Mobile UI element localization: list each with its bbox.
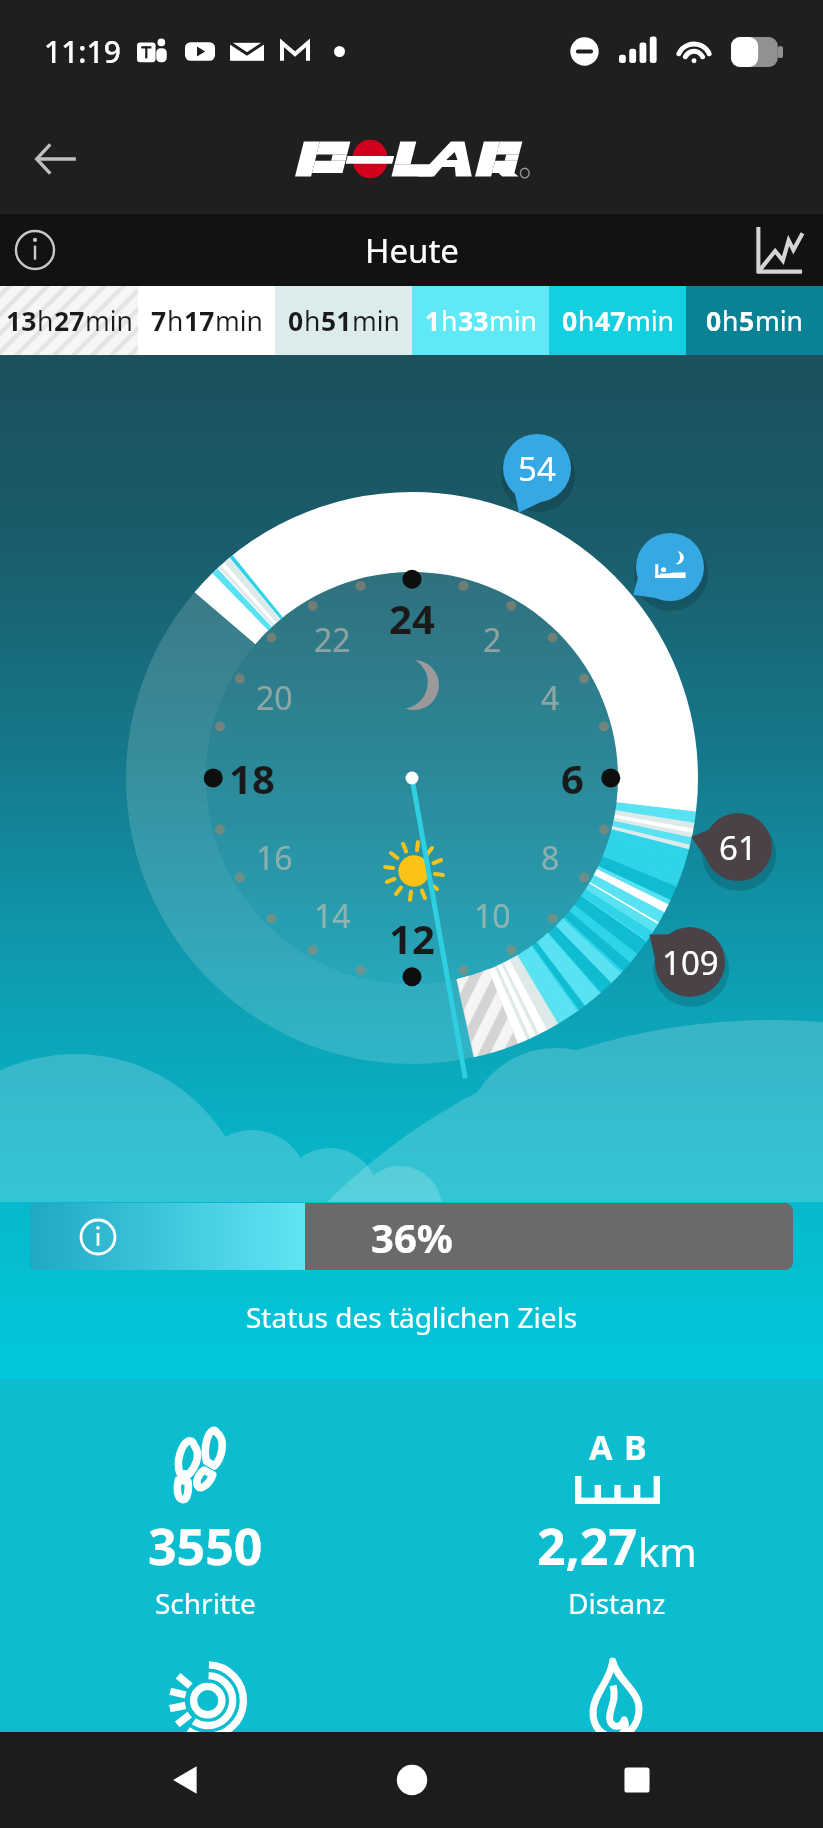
staticText: 8 bbox=[541, 836, 560, 880]
button[interactable]: 0 bbox=[275, 286, 412, 355]
staticText: 18 bbox=[229, 751, 275, 805]
staticText: 22 bbox=[314, 618, 351, 662]
button[interactable]: 7 bbox=[138, 286, 275, 355]
button[interactable]: 1 bbox=[412, 286, 549, 355]
button[interactable]: Back bbox=[146, 1740, 226, 1820]
staticText: min bbox=[215, 303, 263, 339]
staticText: 2,27 bbox=[537, 1512, 638, 1580]
staticText: 61 bbox=[719, 825, 757, 870]
staticText: 0 bbox=[562, 303, 578, 339]
staticText: 1 bbox=[425, 303, 441, 339]
staticText: 10 bbox=[474, 894, 511, 938]
staticText: h bbox=[37, 303, 54, 339]
button[interactable]: Info bbox=[8, 223, 62, 277]
staticText: h bbox=[441, 303, 458, 339]
staticText: 12 bbox=[389, 911, 435, 965]
staticText: 33 bbox=[458, 303, 489, 339]
staticText: 4 bbox=[541, 676, 560, 720]
button[interactable] bbox=[612, 509, 728, 625]
button[interactable]: Home bbox=[372, 1740, 452, 1820]
staticText: 47 bbox=[595, 303, 626, 339]
staticText: min bbox=[352, 303, 400, 339]
staticText: 14 bbox=[314, 894, 351, 938]
staticText: Distanz bbox=[568, 1584, 666, 1622]
staticText: min bbox=[755, 303, 803, 339]
staticText: h bbox=[578, 303, 595, 339]
staticText: 7 bbox=[151, 303, 167, 339]
button[interactable]: Calories bbox=[411, 1655, 823, 1747]
button[interactable]: A bbox=[411, 1424, 823, 1622]
staticText: B bbox=[624, 1424, 647, 1470]
staticText: 0 bbox=[706, 303, 722, 339]
staticText: Status des täglichen Ziels bbox=[246, 1298, 578, 1336]
button[interactable]: 36% bbox=[30, 1203, 793, 1270]
button[interactable]: Recent apps bbox=[597, 1740, 677, 1820]
staticText: 11:19 bbox=[44, 31, 121, 72]
staticText: h bbox=[722, 303, 739, 339]
button[interactable]: 13 bbox=[0, 286, 138, 355]
staticText: min bbox=[489, 303, 537, 339]
staticText: Schritte bbox=[155, 1584, 256, 1622]
staticText: 24 bbox=[389, 591, 435, 645]
staticText: 0 bbox=[288, 303, 304, 339]
staticText: 6 bbox=[561, 751, 584, 805]
staticText: 3550 bbox=[148, 1512, 263, 1580]
button[interactable]: 3550 bbox=[0, 1424, 411, 1622]
button[interactable]: 0 bbox=[686, 286, 823, 355]
staticText: 27 bbox=[54, 303, 85, 339]
staticText: 51 bbox=[321, 303, 352, 339]
staticText: 2 bbox=[483, 618, 502, 662]
staticText: Heute bbox=[365, 228, 459, 273]
button[interactable]: Activity chart bbox=[749, 220, 809, 280]
staticText: min bbox=[85, 303, 133, 339]
button[interactable]: 0 bbox=[549, 286, 686, 355]
button[interactable]: Active time bbox=[0, 1655, 411, 1747]
staticText: min bbox=[626, 303, 674, 339]
staticText: 20 bbox=[256, 676, 293, 720]
staticText: 109 bbox=[662, 940, 719, 985]
button[interactable]: 109 bbox=[629, 901, 751, 1023]
staticText: 16 bbox=[256, 836, 293, 880]
button[interactable]: 61 bbox=[678, 787, 798, 907]
button[interactable]: Back bbox=[22, 125, 90, 193]
staticText: km bbox=[638, 1524, 697, 1578]
staticText: A bbox=[589, 1424, 613, 1470]
staticText: 13 bbox=[6, 303, 37, 339]
staticText: 54 bbox=[518, 446, 556, 491]
staticText: 5 bbox=[739, 303, 755, 339]
staticText: h bbox=[304, 303, 321, 339]
button[interactable]: 54 bbox=[477, 408, 597, 528]
staticText: 36% bbox=[371, 1210, 453, 1264]
staticText: h bbox=[167, 303, 184, 339]
staticText: 17 bbox=[184, 303, 215, 339]
